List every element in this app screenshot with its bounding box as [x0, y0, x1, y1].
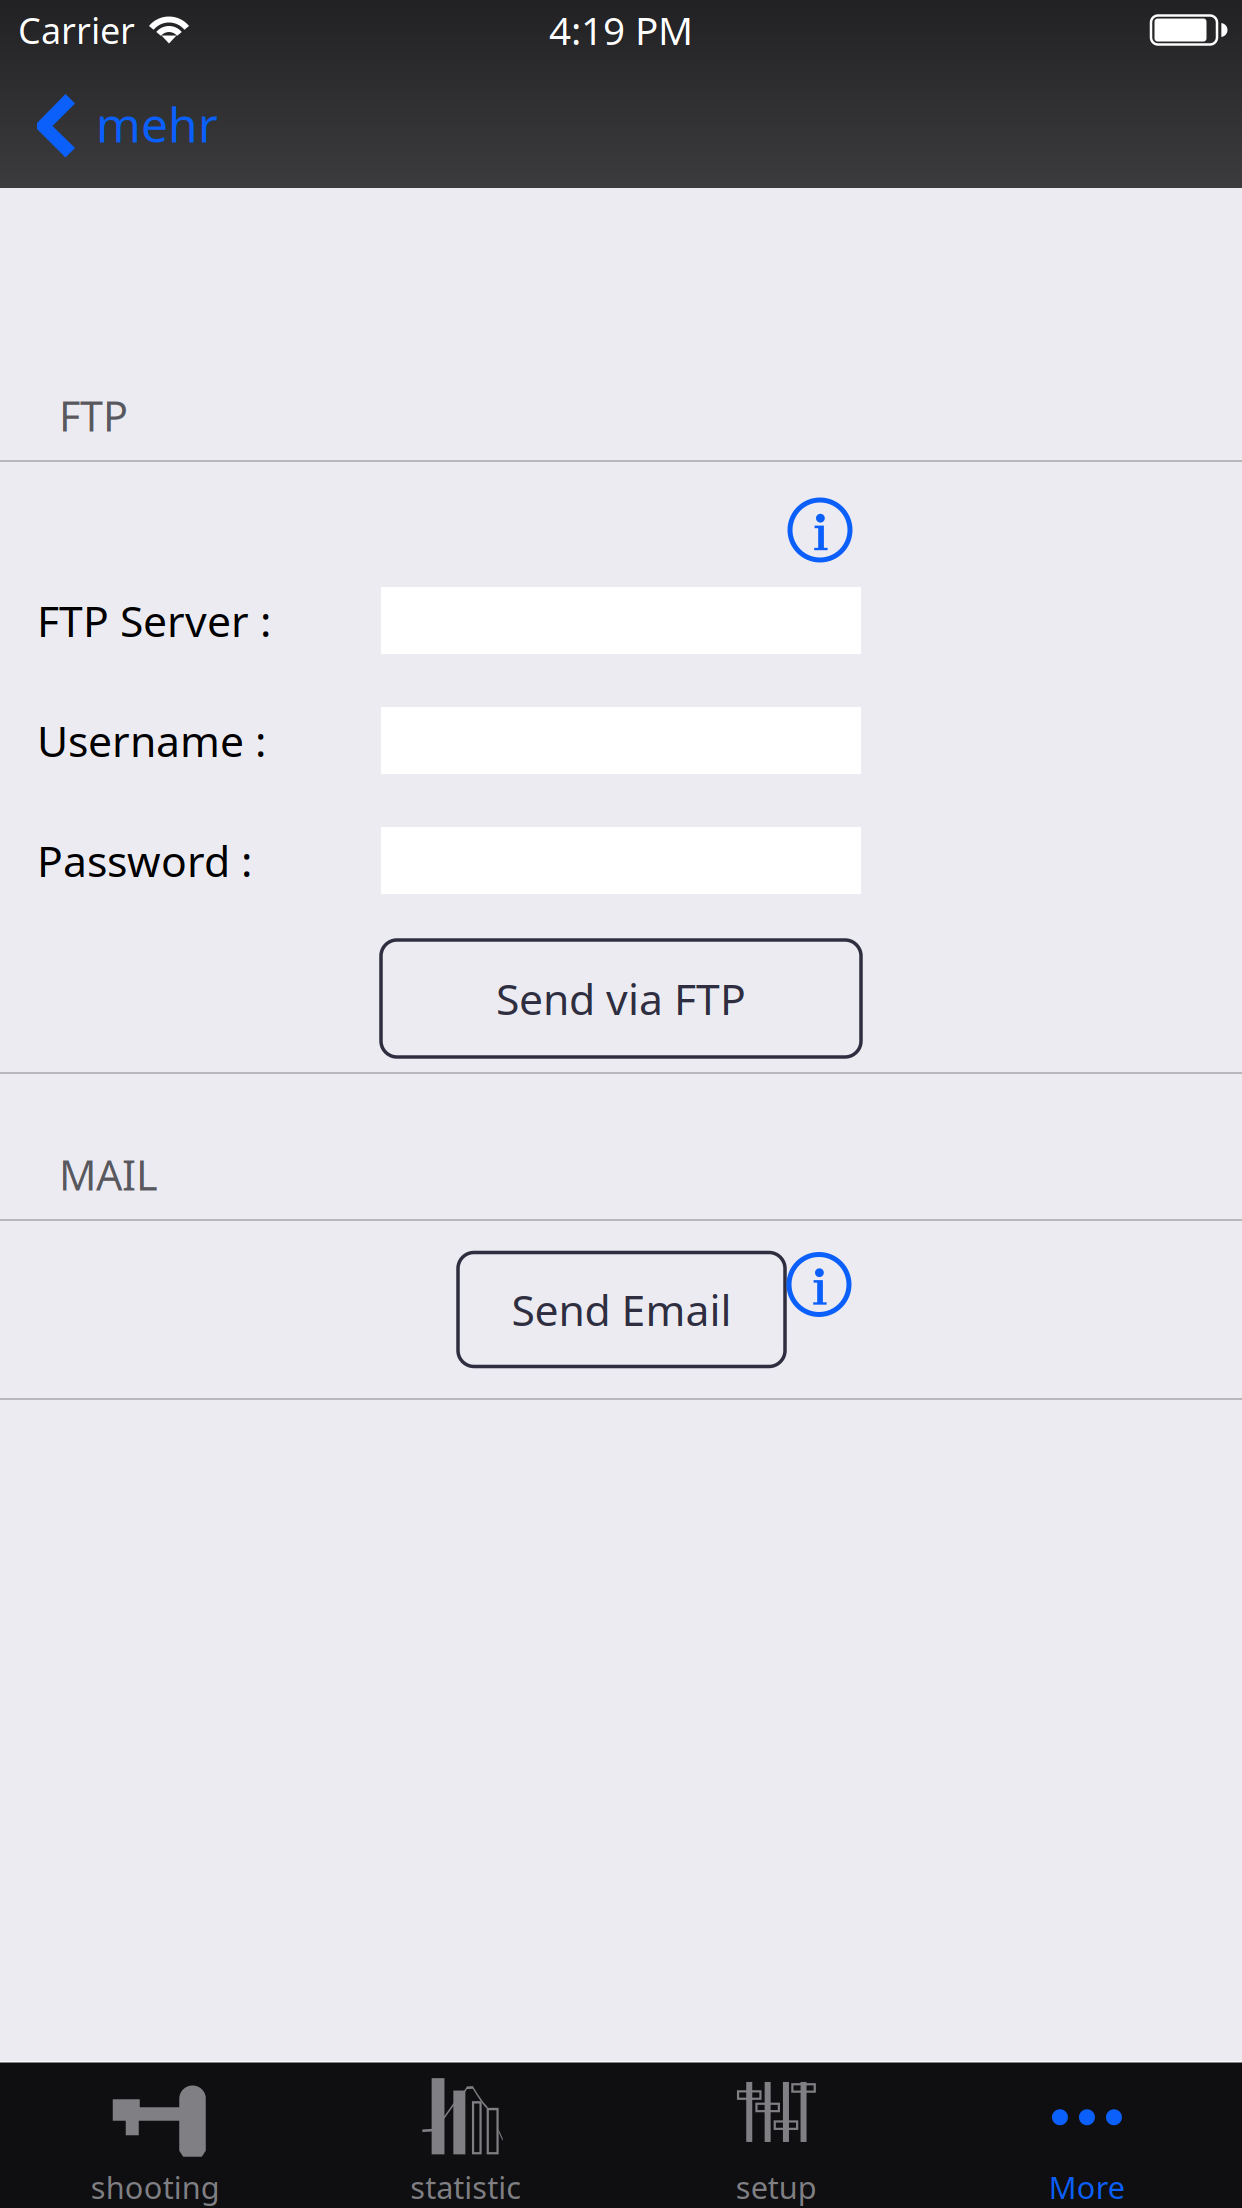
staticText: setup	[736, 2167, 817, 2207]
staticText: shooting	[91, 2167, 220, 2207]
staticText: mehr	[96, 92, 218, 156]
button[interactable]: Send via FTP	[381, 940, 861, 1057]
staticText: Send via FTP	[496, 970, 746, 1027]
staticText: 4:19 PM	[549, 4, 693, 56]
staticText: Carrier	[18, 6, 135, 54]
button[interactable]: Mail help	[787, 1252, 851, 1316]
button[interactable]: mehr	[0, 60, 242, 188]
staticText: MAIL	[59, 1147, 158, 1202]
button[interactable]: setup	[621, 2063, 931, 2208]
staticText: Username :	[37, 712, 266, 769]
staticText: statistic	[410, 2167, 521, 2207]
staticText: More	[1049, 2167, 1125, 2207]
staticText: FTP	[59, 388, 128, 443]
button[interactable]: More	[931, 2063, 1242, 2208]
staticText: Send Email	[511, 1281, 731, 1338]
button[interactable]: Send Email	[458, 1252, 785, 1366]
staticText: FTP Server :	[37, 592, 271, 649]
button[interactable]: shooting	[0, 2063, 310, 2208]
staticText: Password :	[37, 832, 252, 889]
button[interactable]: FTP help	[788, 498, 852, 562]
button[interactable]: statistic	[310, 2063, 621, 2208]
